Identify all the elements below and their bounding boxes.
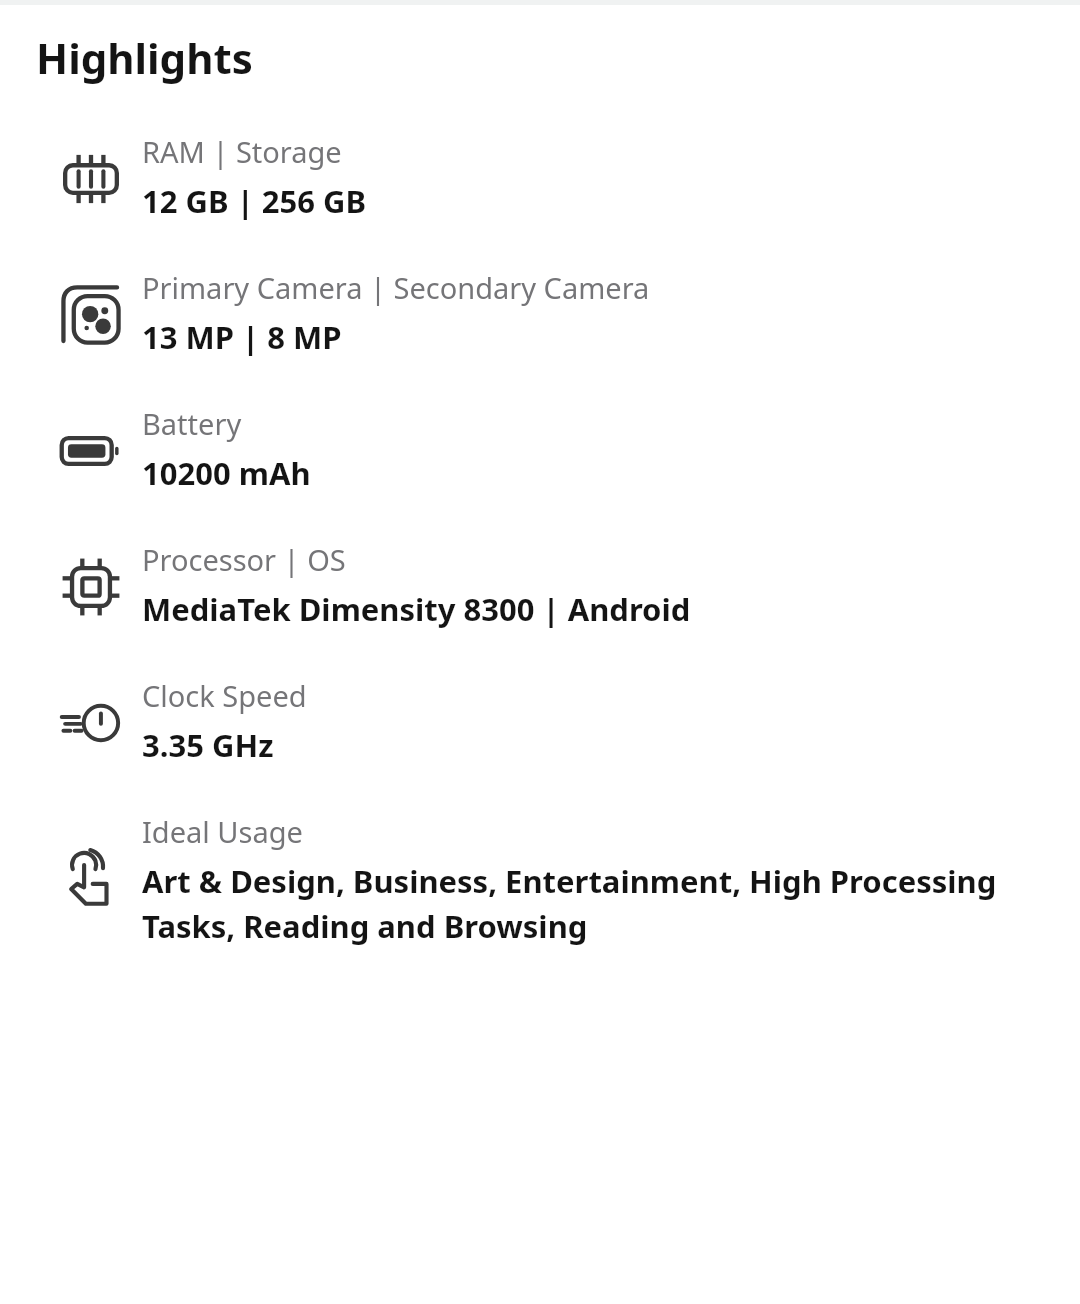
other: Memory [40,148,142,210]
staticText: 12 GB | 256 GB [142,180,367,222]
staticText: Highlights [36,29,253,86]
staticText: Processor | OS [142,540,346,579]
staticText: Clock Speed [142,676,307,715]
button[interactable]: Camera [0,268,1080,358]
staticText: 3.35 GHz [142,724,274,766]
other: Ideal usage [40,846,142,908]
button[interactable]: Battery [0,404,1080,494]
staticText: Battery [142,404,242,443]
button[interactable]: Clock speed [0,676,1080,766]
other: Battery [40,420,142,482]
button[interactable]: Processor [0,540,1080,630]
staticText: Primary Camera | Secondary Camera [142,268,650,307]
button[interactable]: Ideal usage [0,812,1080,947]
staticText: Ideal Usage [142,812,303,851]
staticText: MediaTek Dimensity 8300 | Android [142,588,691,630]
staticText: Art & Design, Business, Entertainment, H… [142,860,1056,947]
staticText: 10200 mAh [142,452,311,494]
other: Clock speed [40,692,142,754]
other: Processor [40,556,142,618]
other: Camera [40,284,142,346]
button[interactable]: Memory [0,132,1080,222]
staticText: 13 MP | 8 MP [142,316,342,358]
staticText: RAM | Storage [142,132,342,171]
